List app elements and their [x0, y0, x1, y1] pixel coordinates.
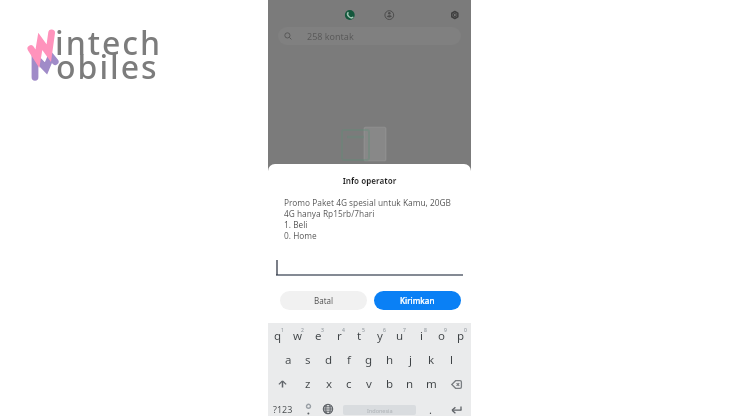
staticText: Batal — [314, 295, 334, 306]
button[interactable]: d — [319, 350, 339, 370]
staticText: intech — [55, 21, 163, 65]
button[interactable]: Batal — [280, 291, 367, 310]
staticText: ?123 — [273, 403, 293, 415]
button[interactable]: q — [268, 326, 288, 346]
button[interactable]: n — [400, 374, 420, 394]
button[interactable]: Kirimkan — [374, 291, 461, 310]
staticText: p — [457, 328, 465, 344]
button[interactable]: z — [298, 374, 318, 394]
button[interactable]: 258 kontak — [278, 27, 461, 45]
staticText: l — [450, 352, 453, 368]
button[interactable]: Comma — [298, 399, 318, 416]
staticText: t — [357, 328, 362, 344]
button[interactable]: i — [411, 326, 431, 346]
staticText: Kirimkan — [400, 295, 435, 306]
staticText: c — [346, 376, 352, 392]
staticText: 7 — [403, 327, 406, 334]
button[interactable]: t — [349, 326, 369, 346]
staticText: q — [274, 328, 282, 344]
staticText: obiles — [56, 45, 159, 89]
staticText: i — [420, 328, 423, 344]
staticText: Promo Paket 4G spesial untuk Kamu, 20GB — [284, 197, 451, 208]
staticText: 3 — [321, 327, 324, 334]
button[interactable]: l — [441, 350, 461, 370]
button[interactable]: f — [339, 350, 359, 370]
staticText: 8 — [424, 327, 427, 334]
staticText: 9 — [444, 327, 447, 334]
button[interactable]: e — [308, 326, 328, 346]
staticText: 4 — [342, 327, 345, 334]
staticText: k — [428, 352, 435, 368]
button[interactable]: x — [319, 374, 339, 394]
staticText: 0. Home — [284, 230, 317, 241]
button[interactable]: y — [370, 326, 390, 346]
button[interactable]: w — [288, 326, 308, 346]
button[interactable]: r — [329, 326, 349, 346]
staticText: 1 — [281, 327, 284, 334]
staticText: y — [377, 328, 383, 344]
button[interactable]: v — [359, 374, 379, 394]
button[interactable]: k — [421, 350, 441, 370]
button[interactable]: u — [390, 326, 410, 346]
staticText: 1. Beli — [284, 219, 308, 230]
button[interactable]: m — [421, 374, 441, 394]
staticText: 6 — [383, 327, 386, 334]
button[interactable]: g — [359, 350, 379, 370]
button[interactable]: h — [380, 350, 400, 370]
staticText: o — [438, 328, 445, 344]
button[interactable]: p — [451, 326, 471, 346]
button[interactable]: o — [431, 326, 451, 346]
button[interactable]: Enter — [444, 399, 468, 416]
staticText: g — [365, 352, 373, 368]
staticText: u — [396, 328, 404, 344]
button[interactable]: j — [400, 350, 420, 370]
staticText: 5 — [362, 327, 365, 334]
button[interactable]: b — [380, 374, 400, 394]
button[interactable]: Indonesia — [343, 405, 416, 415]
staticText: s — [305, 352, 311, 368]
staticText: Info operator — [268, 175, 471, 186]
staticText: f — [347, 352, 351, 368]
button[interactable]: ?123 — [269, 399, 297, 416]
staticText: j — [409, 352, 412, 368]
staticText: 258 kontak — [307, 30, 354, 42]
staticText: z — [305, 376, 311, 392]
staticText: 2 — [301, 327, 304, 334]
staticText: h — [386, 352, 394, 368]
staticText: 4G hanya Rp15rb/7hari — [284, 208, 375, 219]
button[interactable]: Change language — [318, 399, 338, 416]
staticText: n — [406, 376, 414, 392]
staticText: a — [285, 352, 292, 368]
staticText: b — [386, 376, 394, 392]
staticText: e — [315, 328, 322, 344]
button[interactable]: . — [420, 399, 440, 416]
button[interactable]: Backspace — [446, 374, 467, 394]
staticText: x — [326, 376, 333, 392]
staticText: . — [429, 402, 432, 416]
staticText: w — [293, 328, 303, 344]
button[interactable]: s — [298, 350, 318, 370]
staticText: Indonesia — [367, 407, 393, 414]
staticText: r — [337, 328, 342, 344]
button[interactable]: Shift — [272, 374, 293, 394]
staticText: m — [426, 376, 437, 392]
staticText: v — [366, 376, 372, 392]
button[interactable]: a — [278, 350, 298, 370]
staticText: 0 — [464, 327, 467, 334]
staticText: d — [325, 352, 333, 368]
button[interactable]: c — [339, 374, 359, 394]
